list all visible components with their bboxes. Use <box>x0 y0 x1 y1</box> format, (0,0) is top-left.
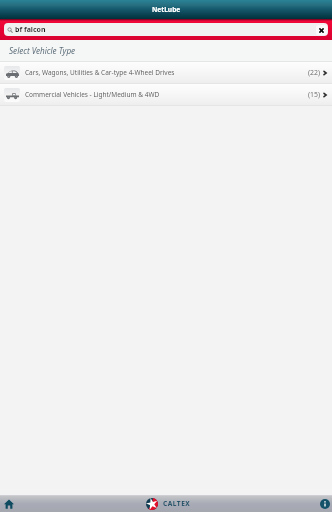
staticText: NetLube <box>152 5 181 14</box>
button[interactable]: Clear search <box>316 25 327 35</box>
staticText: (15) <box>308 90 321 99</box>
button[interactable]: Cars, Wagons, Utilities & Car-type 4-Whe… <box>0 62 332 83</box>
staticText: Select Vehicle Type <box>9 45 76 56</box>
staticText: (22) <box>308 68 321 77</box>
button[interactable]: Home <box>0 495 17 512</box>
button[interactable]: bf falcon <box>4 23 328 36</box>
button[interactable]: Information <box>317 495 332 512</box>
staticText: bf falcon <box>15 25 46 35</box>
staticText: Commercial Vehicles - Light/Medium & 4WD <box>25 90 160 99</box>
staticText: Cars, Wagons, Utilities & Car-type 4-Whe… <box>25 68 175 77</box>
button[interactable]: Commercial Vehicles - Light/Medium & 4WD <box>0 84 332 105</box>
button[interactable]: CALTEX <box>140 495 193 512</box>
staticText: CALTEX <box>163 499 191 508</box>
